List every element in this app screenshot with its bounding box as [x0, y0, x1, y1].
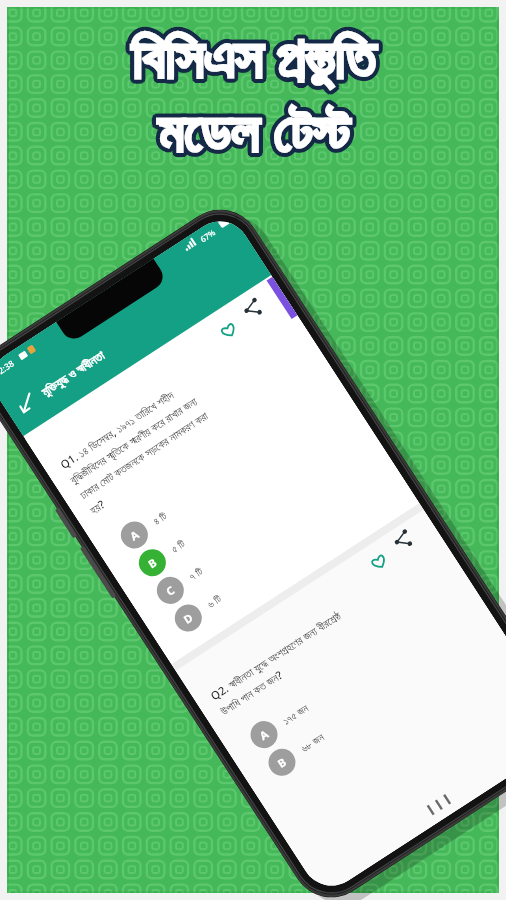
button[interactable]: BCS Preparation Model Test promo [0, 0, 506, 900]
